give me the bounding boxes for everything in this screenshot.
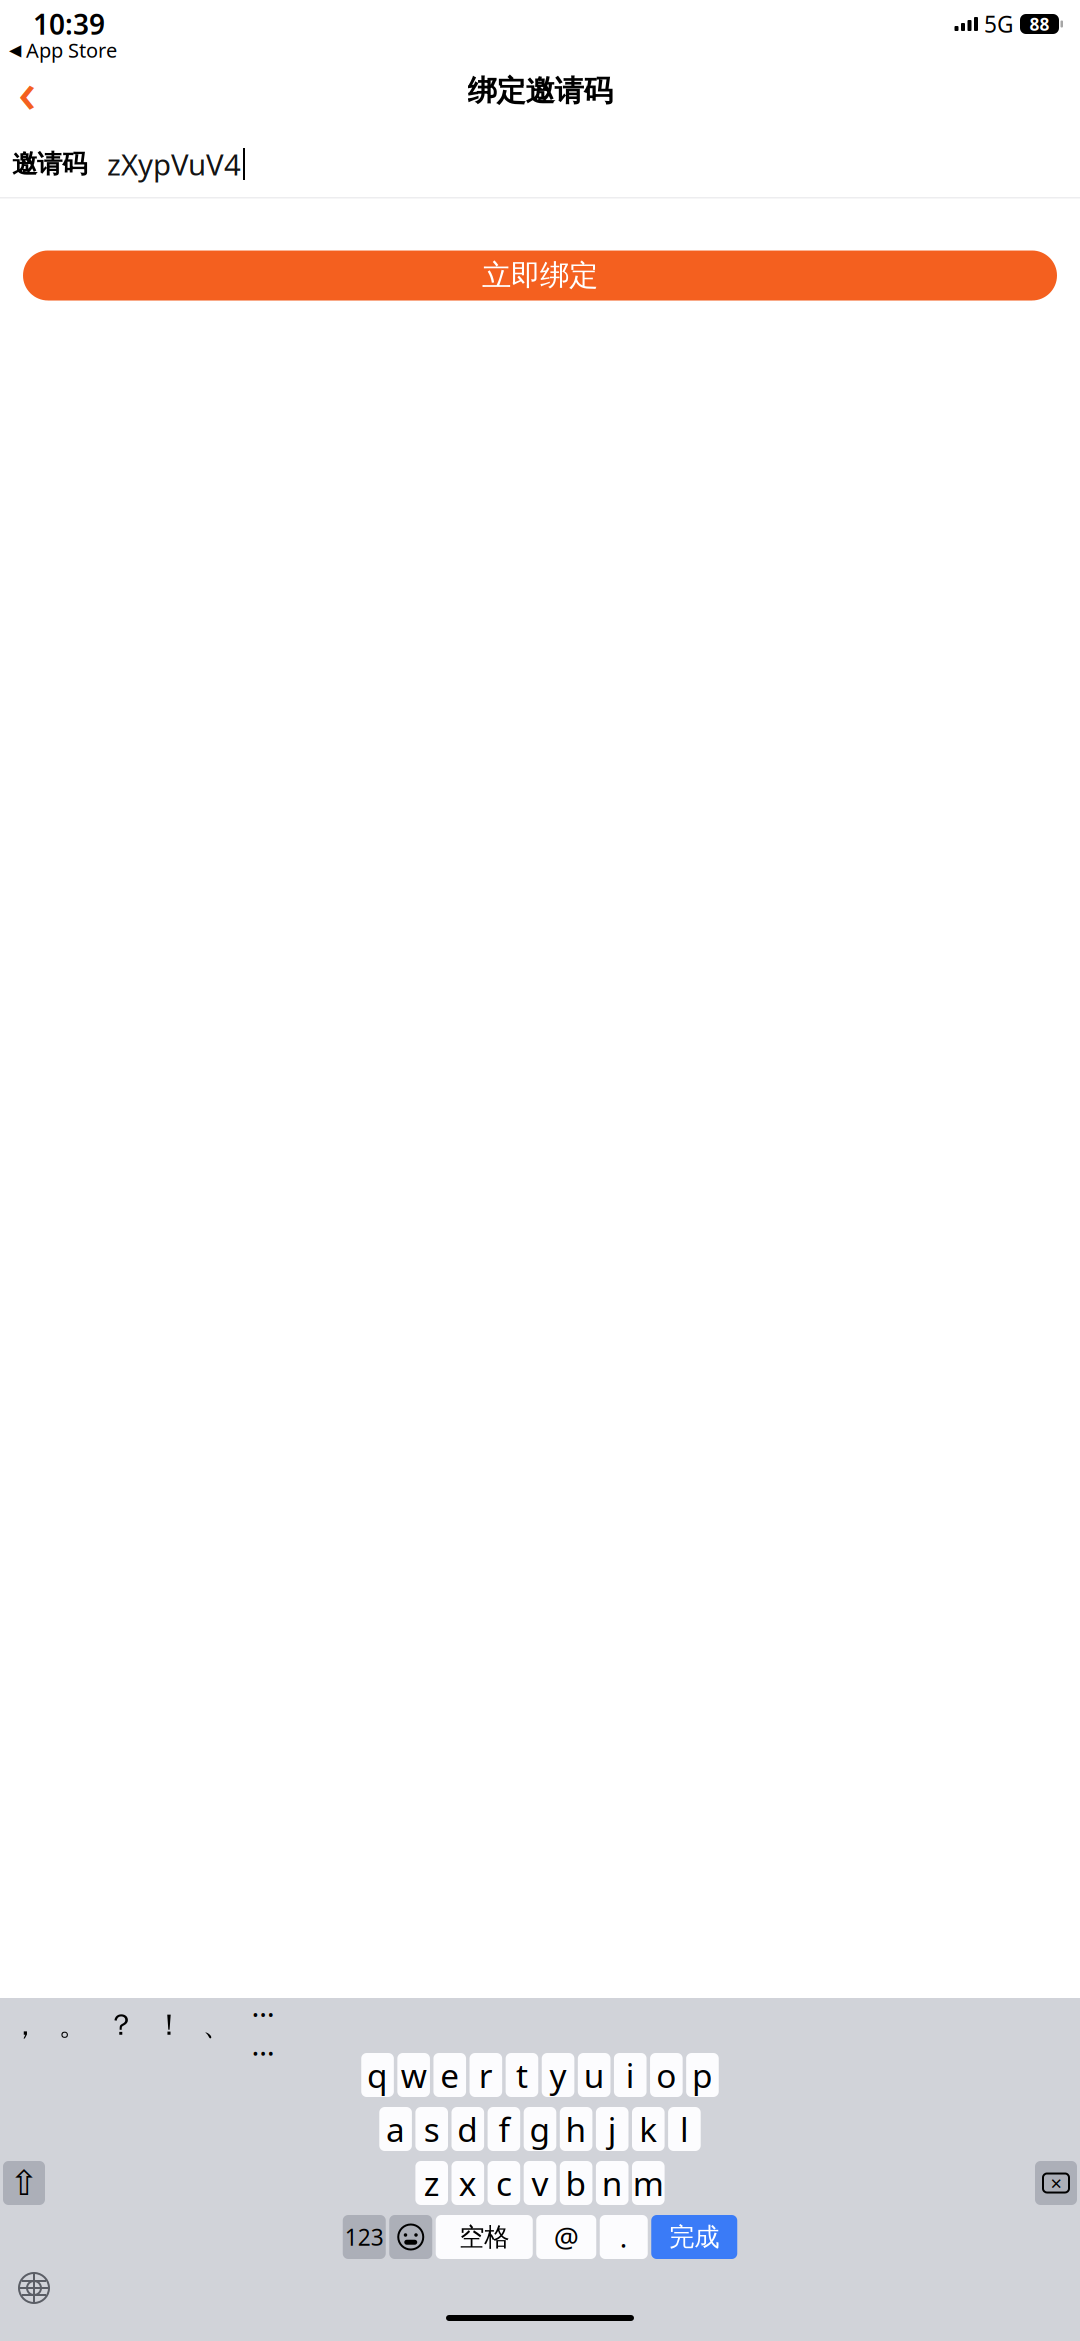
button[interactable]: z bbox=[415, 2161, 448, 2205]
staticText: ， bbox=[10, 2007, 39, 2043]
staticText: k bbox=[639, 2107, 657, 2151]
staticText: 10:39 bbox=[33, 5, 105, 43]
staticText: a bbox=[386, 2107, 405, 2151]
staticText: …… bbox=[251, 1986, 274, 2064]
button[interactable]: e bbox=[433, 2053, 466, 2097]
staticText: 绑定邀请码 bbox=[467, 73, 612, 109]
staticText: × bbox=[1050, 2170, 1061, 2196]
button[interactable]: …… bbox=[246, 2003, 280, 2047]
staticText: v bbox=[531, 2161, 548, 2205]
button[interactable]: ！ bbox=[152, 2003, 186, 2047]
staticText: 邀请码 bbox=[12, 148, 87, 179]
staticText: 88 bbox=[1029, 12, 1049, 35]
button[interactable]: d bbox=[451, 2107, 484, 2151]
button[interactable]: 、 bbox=[200, 2003, 234, 2047]
button[interactable]: q bbox=[361, 2053, 394, 2097]
staticText: App Store bbox=[26, 37, 117, 63]
button[interactable]: g bbox=[524, 2107, 556, 2151]
button[interactable]: t bbox=[506, 2053, 538, 2097]
button[interactable]: 123 bbox=[343, 2215, 386, 2259]
staticText: n bbox=[602, 2161, 623, 2205]
button[interactable]: 立即绑定 bbox=[23, 250, 1057, 300]
staticText: ◀ bbox=[9, 41, 21, 59]
button[interactable]: ◀ bbox=[0, 35, 117, 65]
button[interactable]: w bbox=[397, 2053, 430, 2097]
button[interactable]: l bbox=[668, 2107, 701, 2151]
staticText: m bbox=[633, 2161, 664, 2205]
staticText: e bbox=[440, 2053, 459, 2097]
staticText: f bbox=[498, 2107, 509, 2151]
button[interactable]: s bbox=[415, 2107, 448, 2151]
button[interactable]: ？ bbox=[104, 2003, 138, 2047]
button[interactable]: p bbox=[686, 2053, 719, 2097]
button[interactable]: 。 bbox=[56, 2003, 90, 2047]
staticText: j bbox=[608, 2107, 617, 2151]
staticText: ⇧ bbox=[9, 2163, 38, 2203]
staticText: ？ bbox=[106, 2007, 135, 2043]
staticText: z bbox=[424, 2161, 440, 2205]
button[interactable]: 空格 bbox=[436, 2215, 533, 2259]
button[interactable]: @ bbox=[536, 2215, 596, 2259]
button[interactable]: b bbox=[560, 2161, 592, 2205]
staticText: 。 bbox=[58, 2007, 87, 2043]
staticText: 5G bbox=[984, 9, 1014, 39]
staticText: q bbox=[367, 2053, 388, 2097]
button[interactable]: . bbox=[600, 2215, 648, 2259]
button[interactable]: v bbox=[524, 2161, 556, 2205]
button[interactable]: Back bbox=[5, 69, 49, 113]
staticText: p bbox=[692, 2053, 713, 2097]
staticText: @ bbox=[554, 2218, 579, 2256]
staticText: y bbox=[549, 2053, 566, 2097]
staticText: 立即绑定 bbox=[482, 257, 598, 293]
button[interactable]: 完成 bbox=[651, 2215, 737, 2259]
staticText: s bbox=[424, 2107, 440, 2151]
staticText: r bbox=[479, 2053, 493, 2097]
staticText: 、 bbox=[202, 2007, 231, 2043]
button[interactable]: i bbox=[614, 2053, 647, 2097]
staticText: ‹ bbox=[18, 54, 36, 128]
button[interactable]: m bbox=[632, 2161, 665, 2205]
button[interactable]: Delete bbox=[1035, 2161, 1077, 2205]
button[interactable]: h bbox=[560, 2107, 592, 2151]
button[interactable]: f bbox=[488, 2107, 520, 2151]
staticText: 完成 bbox=[669, 2221, 719, 2252]
button[interactable]: x bbox=[451, 2161, 484, 2205]
staticText: 123 bbox=[345, 2222, 384, 2252]
button[interactable]: k bbox=[632, 2107, 665, 2151]
button[interactable]: ， bbox=[8, 2003, 42, 2047]
staticText: t bbox=[516, 2053, 528, 2097]
staticText: c bbox=[496, 2161, 512, 2205]
staticText: x bbox=[459, 2161, 477, 2205]
staticText: zXypVuV4 bbox=[107, 144, 241, 183]
staticText: u bbox=[584, 2053, 605, 2097]
button[interactable]: j bbox=[596, 2107, 628, 2151]
staticText: l bbox=[680, 2107, 689, 2151]
staticText: b bbox=[566, 2161, 587, 2205]
staticText: d bbox=[457, 2107, 478, 2151]
button[interactable]: Emoji bbox=[389, 2215, 432, 2259]
staticText: w bbox=[401, 2053, 427, 2097]
staticText: g bbox=[529, 2107, 550, 2151]
staticText: i bbox=[626, 2053, 635, 2097]
staticText: h bbox=[566, 2107, 587, 2151]
button[interactable]: a bbox=[379, 2107, 412, 2151]
button[interactable]: c bbox=[488, 2161, 520, 2205]
button[interactable]: u bbox=[578, 2053, 610, 2097]
button[interactable]: y bbox=[542, 2053, 574, 2097]
button[interactable]: r bbox=[470, 2053, 502, 2097]
button[interactable]: Switch keyboard bbox=[12, 2266, 56, 2310]
staticText: ！ bbox=[154, 2007, 183, 2043]
button[interactable]: Shift bbox=[3, 2161, 45, 2205]
button[interactable]: zXypVuV4 bbox=[87, 135, 1080, 193]
staticText: o bbox=[656, 2053, 676, 2097]
staticText: . bbox=[620, 2218, 628, 2256]
staticText: 空格 bbox=[459, 2221, 509, 2252]
button[interactable]: o bbox=[650, 2053, 683, 2097]
button[interactable]: n bbox=[596, 2161, 628, 2205]
